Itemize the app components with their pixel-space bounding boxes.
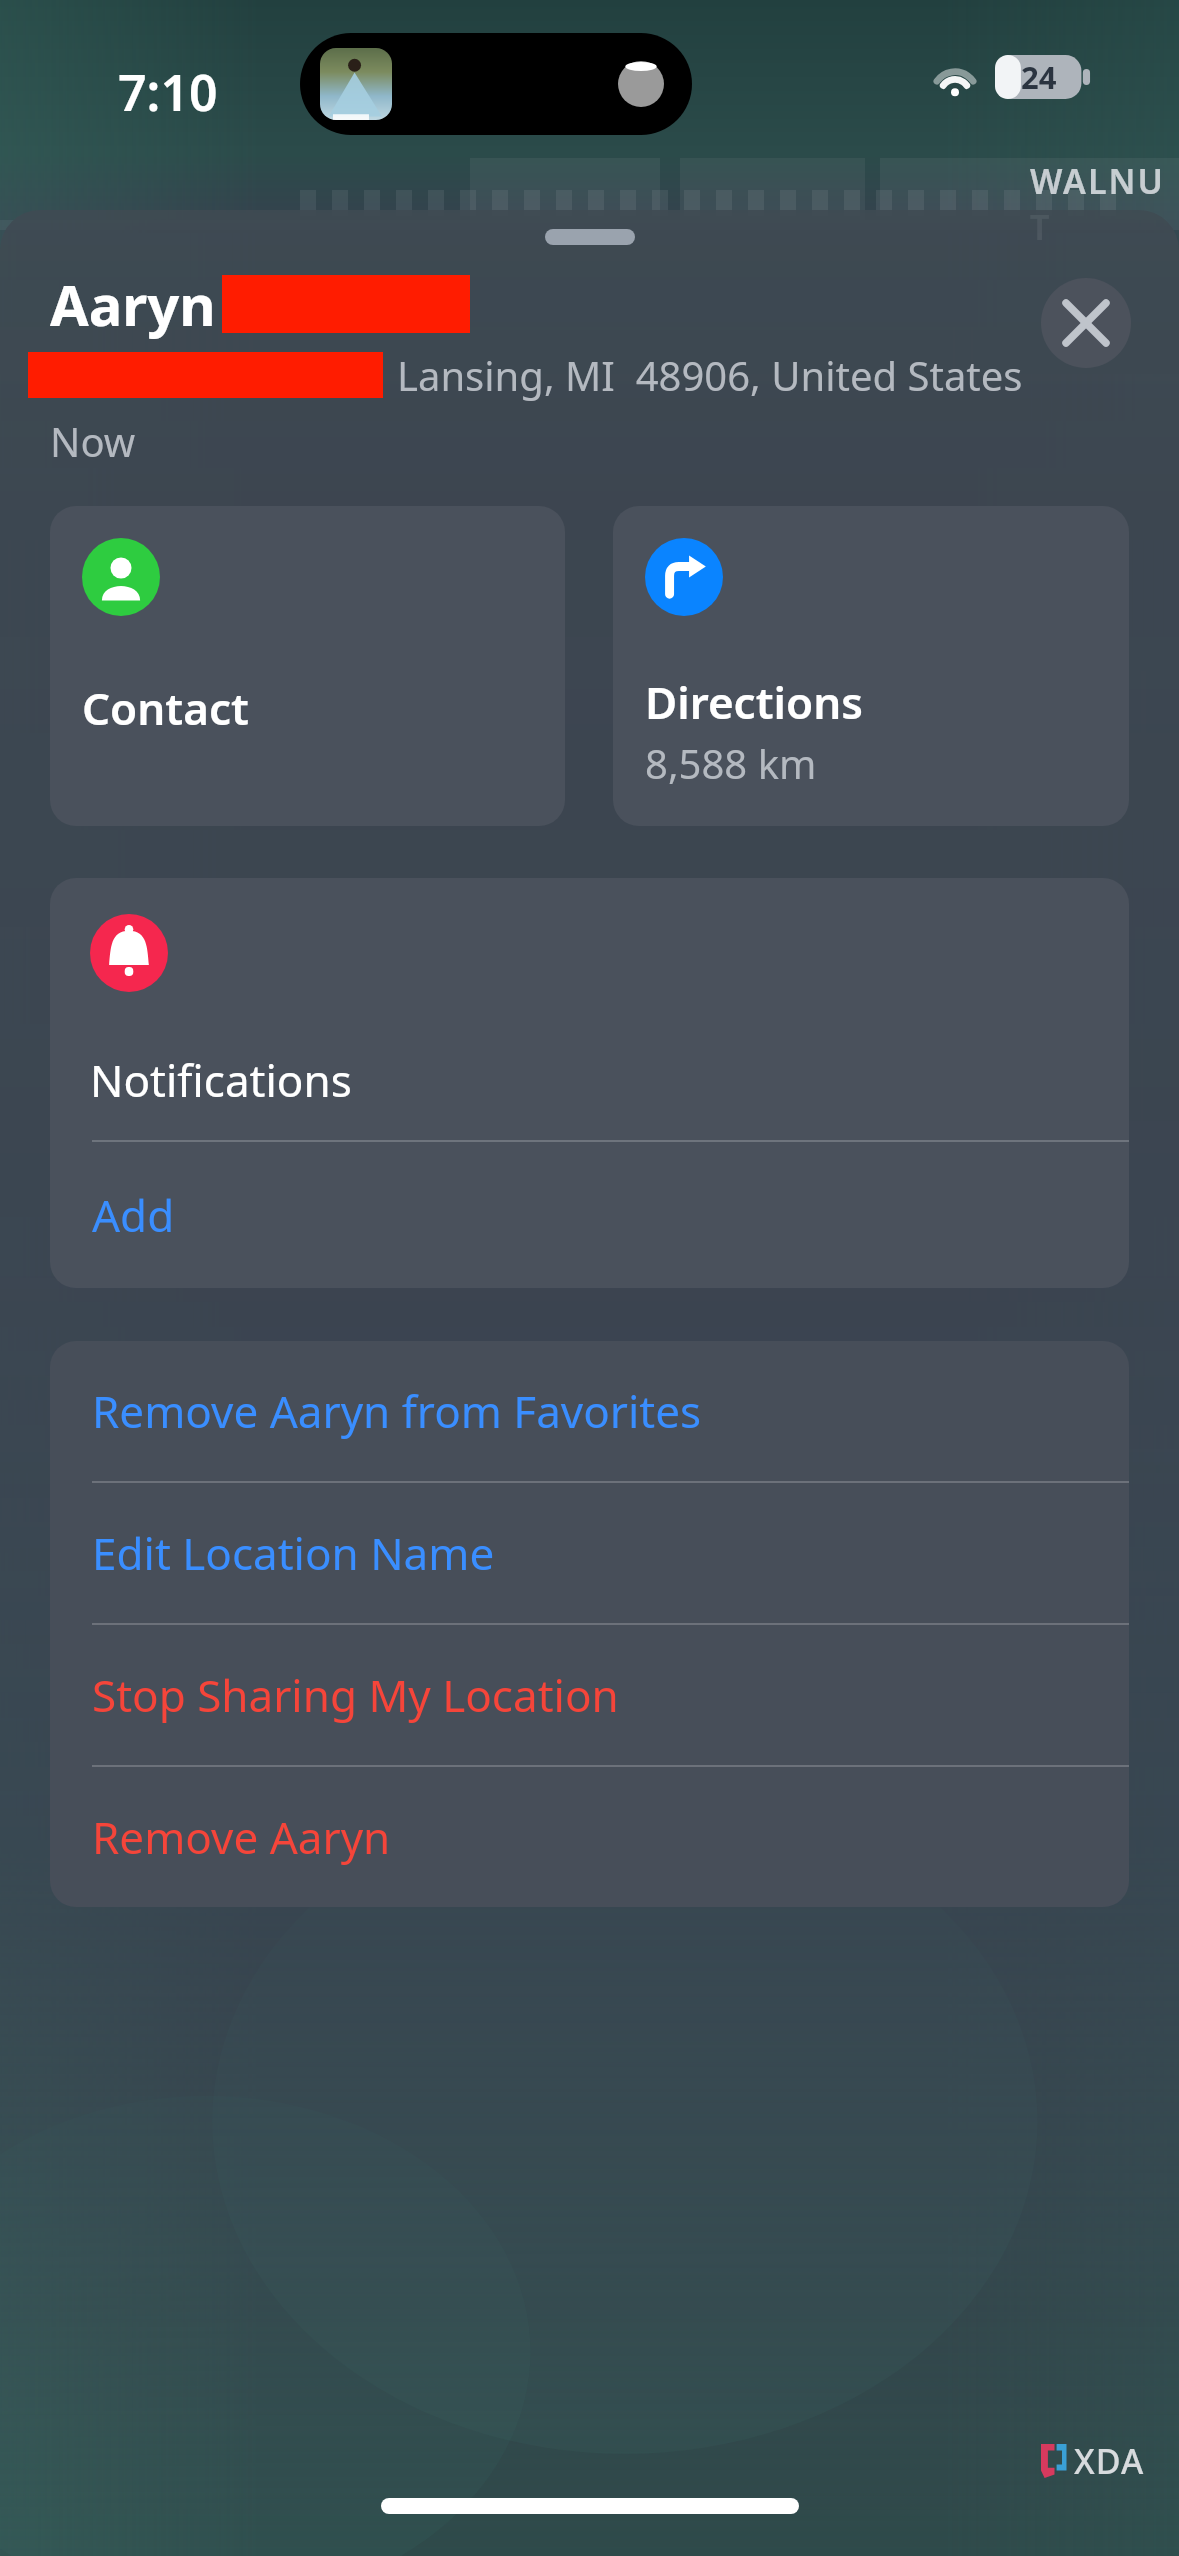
button[interactable]: Notifications	[50, 878, 1129, 1140]
staticText: Contact	[82, 678, 249, 738]
button[interactable]: Edit Location Name	[50, 1483, 1129, 1623]
staticText: XDA	[1074, 2438, 1145, 2484]
staticText: Stop Sharing My Location	[92, 1665, 619, 1725]
button[interactable]: Stop Sharing My Location	[50, 1625, 1129, 1765]
button[interactable]: Add	[50, 1142, 1129, 1288]
staticText: Remove Aaryn	[92, 1807, 391, 1867]
button[interactable]: Close	[1041, 278, 1131, 368]
staticText: Add	[92, 1185, 175, 1245]
staticText: Remove Aaryn from Favorites	[92, 1381, 702, 1441]
staticText: Aaryn	[50, 266, 216, 342]
button[interactable]: Contact	[50, 506, 565, 826]
staticText: Now	[50, 414, 136, 460]
staticText: Edit Location Name	[92, 1523, 495, 1583]
staticText: Directions	[645, 672, 863, 732]
staticText: 24	[1021, 56, 1057, 98]
button[interactable]: Remove Aaryn from Favorites	[50, 1341, 1129, 1481]
staticText: 7:10	[118, 58, 218, 126]
staticText: WALNUT	[1030, 158, 1179, 250]
staticText: Notifications	[90, 1050, 352, 1110]
staticText: 8,588 km	[645, 736, 817, 790]
staticText: Lansing, MI 48906, United States	[397, 348, 1023, 402]
button[interactable]: Directions	[613, 506, 1129, 826]
button[interactable]: Remove Aaryn	[50, 1767, 1129, 1907]
